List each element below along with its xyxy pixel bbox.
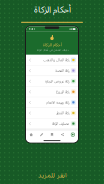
staticText: أحكام الزكاة xyxy=(33,3,70,15)
button[interactable]: زكاة بهيمة الأنعام xyxy=(26,97,78,108)
button[interactable]: Share xyxy=(57,130,68,139)
button[interactable]: مصارف الزكاة xyxy=(26,118,78,129)
button[interactable]: زكاة الزروع xyxy=(26,87,78,97)
button[interactable]: زكاة الفضة xyxy=(26,65,78,76)
staticText: زكاة بهيمة الأنعام xyxy=(46,100,69,105)
staticText: زكاة المال والذهب xyxy=(43,57,69,62)
staticText: 9:41 xyxy=(29,27,36,31)
button[interactable]: زكاة المال والذهب xyxy=(26,55,78,65)
staticText: دليلك الشامل في أحكام الزكاة xyxy=(36,48,68,52)
button[interactable]: زكاة عروض التجارة xyxy=(26,76,78,87)
button[interactable]: Bookmarks xyxy=(47,130,57,139)
staticText: زكاة الزروع xyxy=(56,89,69,94)
staticText: مصارف الزكاة xyxy=(52,121,69,126)
button[interactable]: Edit xyxy=(36,130,47,139)
button[interactable]: زكاة الفطر xyxy=(26,108,78,118)
staticText: انقر للمزيد xyxy=(37,170,66,179)
staticText: زكاة الفطر xyxy=(56,110,69,115)
staticText: زكاة عروض التجارة xyxy=(45,79,69,84)
button[interactable]: Home xyxy=(26,130,36,139)
button[interactable]: More xyxy=(68,130,78,139)
staticText: زكاة الفضة xyxy=(55,68,69,73)
staticText: أحكام الزكاة xyxy=(42,42,61,48)
